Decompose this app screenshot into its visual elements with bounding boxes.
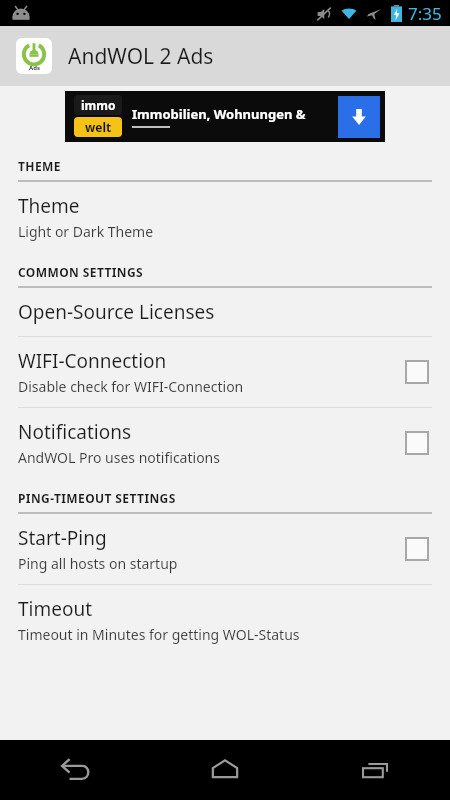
button[interactable]: Timeout	[0, 585, 450, 655]
staticText: Disable check for WIFI-Connection	[18, 377, 244, 396]
staticText: Ping all hosts on startup	[18, 554, 178, 573]
button[interactable]: Open-Source Licenses	[0, 288, 450, 336]
button[interactable]: Back	[48, 743, 102, 797]
staticText: Immobilien, Wohnungen & Häuser	[132, 105, 332, 123]
button[interactable]: Install	[338, 96, 380, 138]
staticText: Timeout	[18, 596, 93, 622]
button[interactable]: Start-Ping checkbox	[402, 534, 432, 564]
button[interactable]: Home	[198, 743, 252, 797]
staticText: welt	[85, 119, 112, 135]
staticText: Open-Source Licenses	[18, 299, 215, 325]
staticText: AndWOL Pro uses notifications	[18, 448, 220, 467]
button[interactable]: WIFI-Connection	[0, 337, 450, 407]
staticText: Start-Ping	[18, 525, 107, 551]
staticText: COMMON SETTINGS	[18, 264, 144, 280]
button[interactable]: immo	[65, 91, 385, 142]
staticText: Timeout in Minutes for getting WOL-Statu…	[18, 625, 300, 644]
staticText: Notifications	[18, 419, 132, 445]
staticText: THEME	[18, 158, 61, 174]
staticText: AndWOL 2 Ads	[68, 42, 214, 71]
staticText: 7:35	[408, 2, 442, 25]
staticText: PING-TIMEOUT SETTINGS	[18, 490, 176, 506]
button[interactable]: WIFI-Connection checkbox	[402, 357, 432, 387]
staticText: Ads	[29, 64, 40, 72]
button[interactable]: Recent apps	[348, 743, 402, 797]
staticText: Light or Dark Theme	[18, 222, 154, 241]
staticText: immo	[81, 97, 116, 113]
button[interactable]: Notifications checkbox	[402, 428, 432, 458]
staticText: Theme	[18, 193, 80, 219]
button[interactable]: Notifications	[0, 408, 450, 478]
staticText: WIFI-Connection	[18, 348, 167, 374]
button[interactable]: Start-Ping	[0, 514, 450, 584]
button[interactable]: Theme	[0, 182, 450, 252]
